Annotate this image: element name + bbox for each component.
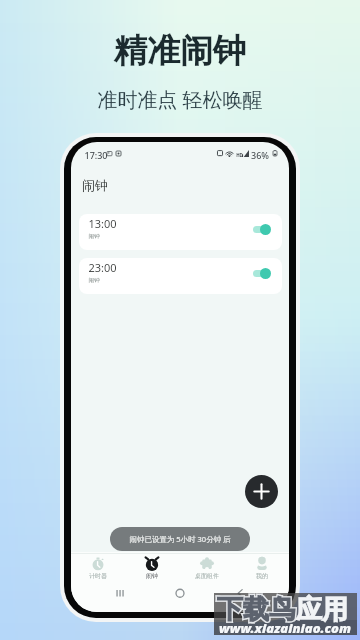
staticText: 闹钟 [146,572,158,580]
staticText: 下载鸟 [217,593,295,626]
staticText: 准时准点 轻松唤醒 [97,86,263,113]
button[interactable]: 23:00 [79,258,282,294]
button[interactable]: 添加闹钟 [245,475,278,508]
staticText: 17:30 [84,149,108,161]
staticText: 23:00 [88,260,117,275]
staticText: 36% [251,149,269,161]
button[interactable]: 计时器 [71,552,125,584]
staticText: 精准闹钟 [114,30,246,72]
staticText: 计时器 [89,572,107,580]
staticText: 我的 [256,572,268,580]
button[interactable]: 闹钟开关 [249,265,273,287]
button[interactable]: 我的 [234,552,289,584]
button[interactable]: 闹钟开关 [249,221,273,243]
staticText: 桌面组件 [195,572,219,580]
staticText: 闹钟 [88,233,100,240]
staticText: 闹钟 [82,177,108,193]
staticText: 闹钟 [88,277,100,284]
staticText: HD [236,152,243,158]
staticText: 下载鸟 [217,593,295,626]
staticText: www.xiazainiao.com [219,619,352,635]
staticText: 应用 [296,593,348,626]
staticText: 闹钟已设置为 5小时 30分钟 后 [129,534,231,544]
button[interactable]: 闹钟 [125,552,179,584]
button[interactable]: 13:00 [79,214,282,250]
staticText: 13:00 [88,216,117,231]
button[interactable]: 桌面组件 [179,552,234,584]
